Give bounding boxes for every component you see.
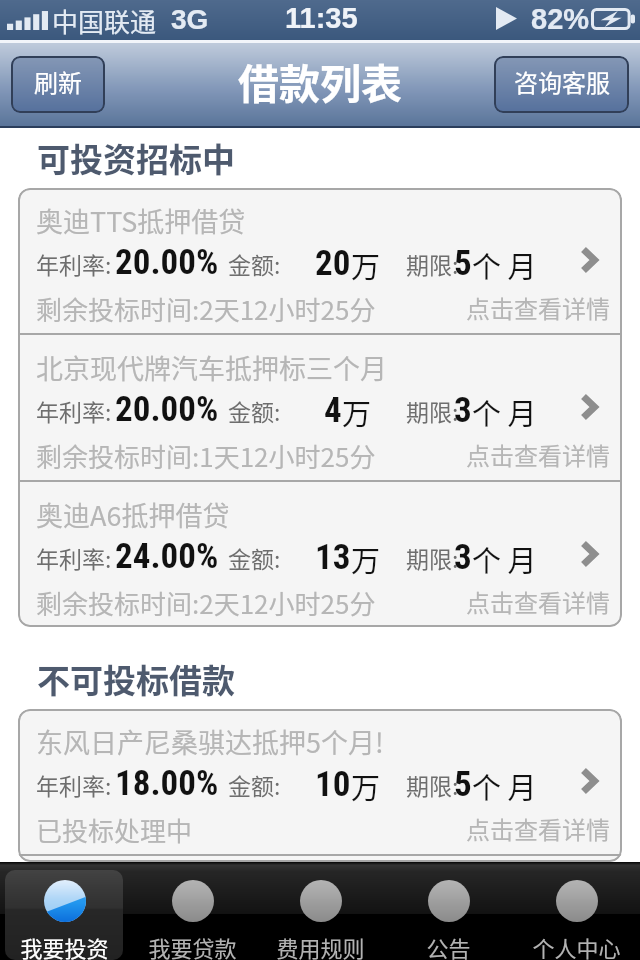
staticText: 万 <box>351 538 381 580</box>
staticText: 13 <box>315 537 351 578</box>
button[interactable]: 我要贷款 <box>133 870 251 960</box>
staticText: 20 <box>315 243 351 284</box>
staticText: 借款列表 <box>238 51 402 110</box>
staticText: 费用规则 <box>276 931 365 960</box>
staticText: 点击查看详情 <box>466 437 610 472</box>
staticText: 20.00% <box>115 242 219 283</box>
staticText: 期限: <box>406 541 459 574</box>
staticText: 3 <box>454 390 472 431</box>
staticText: 18.00% <box>115 763 219 804</box>
staticText: 年利率: <box>36 394 112 427</box>
button[interactable]: 刷新 <box>11 56 105 113</box>
staticText: 中国联通 <box>52 2 157 40</box>
staticText: 期限: <box>406 247 459 280</box>
button[interactable]: 查看详情 <box>579 539 599 569</box>
staticText: 金额: <box>228 768 281 801</box>
button[interactable]: 查看详情 <box>579 392 599 422</box>
button[interactable]: 东风日产尼桑骐达抵押5个月! <box>18 709 622 854</box>
staticText: 我要贷款 <box>148 931 237 960</box>
staticText: 82% <box>531 3 590 35</box>
staticText: 个 月 <box>472 391 537 433</box>
staticText: 可投资招标中 <box>37 134 235 182</box>
staticText: 咨询客服 <box>514 64 610 99</box>
staticText: 万 <box>351 765 381 807</box>
staticText: 11:35 <box>285 2 358 34</box>
staticText: 3G <box>171 4 209 35</box>
staticText: 东风日产尼桑骐达抵押5个月! <box>36 722 384 761</box>
staticText: 期限: <box>406 394 459 427</box>
staticText: 点击查看详情 <box>466 584 610 619</box>
staticText: 已投标处理中 <box>36 811 193 849</box>
staticText: 公告 <box>426 931 471 960</box>
staticText: 3 <box>454 537 472 578</box>
staticText: 金额: <box>228 247 281 280</box>
staticText: 剩余投标时间:1天12小时25分 <box>36 437 376 475</box>
staticText: 金额: <box>228 541 281 574</box>
staticText: 万 <box>351 244 381 286</box>
staticText: 年利率: <box>36 768 112 801</box>
button[interactable]: 咨询客服 <box>494 56 629 113</box>
staticText: 个 月 <box>472 765 537 807</box>
staticText: 5 <box>454 243 472 284</box>
button[interactable]: 费用规则 <box>261 870 379 960</box>
button[interactable]: 公告 <box>389 870 507 960</box>
staticText: 期限: <box>406 768 459 801</box>
staticText: 我要投资 <box>20 931 109 960</box>
staticText: 10 <box>315 764 351 805</box>
staticText: 24.00% <box>115 536 219 577</box>
staticText: 个 月 <box>472 538 537 580</box>
staticText: 万 <box>342 391 372 433</box>
staticText: 剩余投标时间:2天12小时25分 <box>36 290 376 328</box>
button[interactable]: 北京现代牌汽车抵押标三个月 <box>18 335 622 480</box>
button[interactable]: 我要投资 <box>5 870 123 960</box>
staticText: 奥迪A6抵押借贷 <box>36 495 230 534</box>
staticText: 年利率: <box>36 247 112 280</box>
button[interactable]: 奥迪A4抵押借贷三个月 <box>18 856 622 862</box>
staticText: 个人中心 <box>532 931 621 960</box>
staticText: 个 月 <box>472 244 537 286</box>
button[interactable]: 查看详情 <box>579 766 599 796</box>
button[interactable]: 个人中心 <box>517 870 635 960</box>
staticText: 刷新 <box>34 64 82 99</box>
staticText: 20.00% <box>115 389 219 430</box>
staticText: 金额: <box>228 394 281 427</box>
staticText: 剩余投标时间:2天12小时25分 <box>36 584 376 622</box>
button[interactable]: 奥迪TTS抵押借贷 <box>18 188 622 333</box>
staticText: 4 <box>324 390 342 431</box>
staticText: 5 <box>454 764 472 805</box>
staticText: 奥迪TTS抵押借贷 <box>36 201 246 240</box>
staticText: 北京现代牌汽车抵押标三个月 <box>36 348 387 387</box>
button[interactable]: 查看详情 <box>579 245 599 275</box>
button[interactable]: 奥迪A6抵押借贷 <box>18 482 622 627</box>
staticText: 不可投标借款 <box>37 655 235 703</box>
staticText: 点击查看详情 <box>466 811 610 846</box>
staticText: 年利率: <box>36 541 112 574</box>
staticText: 点击查看详情 <box>466 290 610 325</box>
